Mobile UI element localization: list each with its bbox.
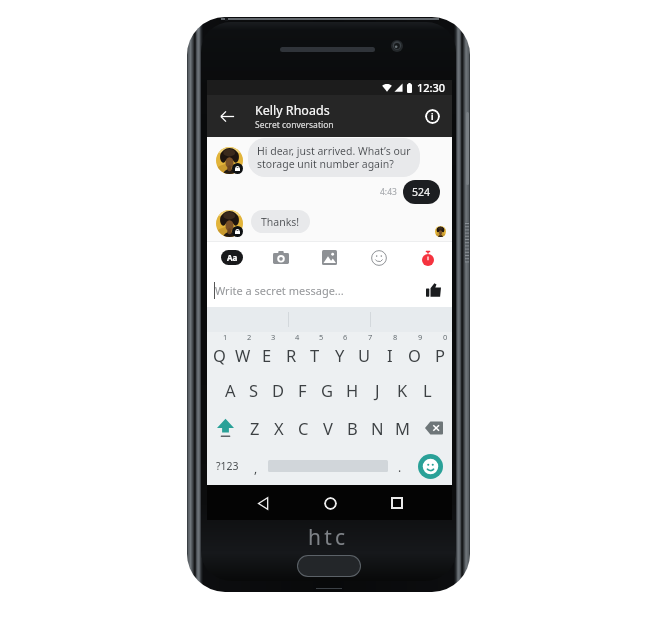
staticText: E [262,344,272,366]
button[interactable]: M [390,409,415,447]
staticText: U [358,344,371,366]
staticText: Secret conversation [255,119,334,131]
staticText: M [395,417,410,439]
button[interactable]: A [218,371,242,409]
staticText: 524 [412,185,431,199]
staticText: 2 [247,332,252,342]
staticText: 1 [223,332,228,342]
staticText: 6 [343,332,348,342]
staticText: ?123 [216,459,239,473]
button[interactable]: 9 [402,332,427,371]
staticText: 9 [418,332,423,342]
staticText: G [321,379,334,401]
staticText: F [298,379,307,401]
button[interactable]: Text formatting [207,242,256,273]
button[interactable]: K [390,371,415,409]
button[interactable]: Conversation info [412,96,452,136]
button[interactable]: 5 [303,332,327,371]
button[interactable]: J [365,371,390,409]
staticText: Y [335,344,345,366]
staticText: 5 [319,332,324,342]
button[interactable]: ?123 [207,447,247,485]
staticText: Kelly Rhoads [255,102,330,119]
button[interactable]: L [415,371,440,409]
button[interactable]: Back [246,486,280,520]
button[interactable]: Recents [380,486,414,520]
button[interactable]: Space [265,447,391,485]
button[interactable]: Back [207,96,247,136]
staticText: C [298,417,309,439]
button[interactable]: S [242,371,266,409]
button[interactable]: Home [313,486,347,520]
staticText: X [274,417,284,439]
button[interactable]: . [391,447,409,485]
button[interactable]: H [340,371,365,409]
staticText: P [435,344,445,366]
staticText: 3 [271,332,276,342]
button[interactable]: Backspace [415,409,452,447]
staticText: Thanks! [261,215,300,229]
button[interactable]: Send like [418,273,448,307]
button[interactable]: B [340,409,365,447]
staticText: O [408,344,421,366]
staticText: 4:43 [380,186,397,198]
staticText: W [235,344,251,366]
staticText: Q [213,344,226,366]
button[interactable]: G [315,371,340,409]
button[interactable]: Thanks! [251,210,310,233]
staticText: 0 [443,332,448,342]
button[interactable]: Camera [256,242,305,273]
staticText: I [387,344,393,366]
staticText: L [423,379,432,401]
staticText: B [347,417,358,439]
button[interactable]: 1 [207,332,231,371]
button[interactable]: 3 [255,332,279,371]
button[interactable]: X [267,409,291,447]
button[interactable]: 0 [427,332,452,371]
staticText: Aa [227,252,238,263]
staticText: i [431,111,434,123]
staticText: Write a secret message... [215,283,344,298]
staticText: H [346,379,359,401]
button[interactable]: Z [243,409,267,447]
button[interactable]: Shift [207,409,243,447]
button[interactable]: , [247,447,265,485]
button[interactable]: F [290,371,315,409]
staticText: R [286,344,297,366]
staticText: 12:30 [417,80,446,95]
staticText: Z [250,417,260,439]
staticText: N [371,417,384,439]
staticText: Hi dear, just arrived. What’s our storag… [257,144,411,171]
button[interactable]: 524 [403,180,440,204]
staticText: 7 [368,332,373,342]
staticText: K [397,379,408,401]
button[interactable]: 7 [352,332,377,371]
button[interactable]: V [315,409,340,447]
button[interactable]: 4 [279,332,303,371]
staticText: D [272,379,285,401]
button[interactable]: Stickers [354,242,403,273]
button[interactable]: Gallery [305,242,354,273]
staticText: . [398,459,402,475]
button[interactable]: 2 [231,332,255,371]
staticText: V [323,417,333,439]
button[interactable]: Emoji [409,447,452,485]
staticText: 4 [295,332,300,342]
staticText: T [310,344,320,366]
button[interactable]: D [266,371,290,409]
button[interactable]: 6 [327,332,352,371]
button[interactable]: N [365,409,390,447]
staticText: A [225,379,236,401]
button[interactable]: C [291,409,315,447]
staticText: S [249,379,259,401]
button[interactable]: Hi dear, just arrived. What’s our storag… [248,138,420,177]
staticText: , [254,460,258,476]
button[interactable]: 8 [377,332,402,371]
button[interactable]: Write a secret message... [215,283,418,298]
staticText: J [375,379,380,401]
button[interactable]: Disappearing messages timer [403,242,452,273]
staticText: htc [308,523,349,552]
